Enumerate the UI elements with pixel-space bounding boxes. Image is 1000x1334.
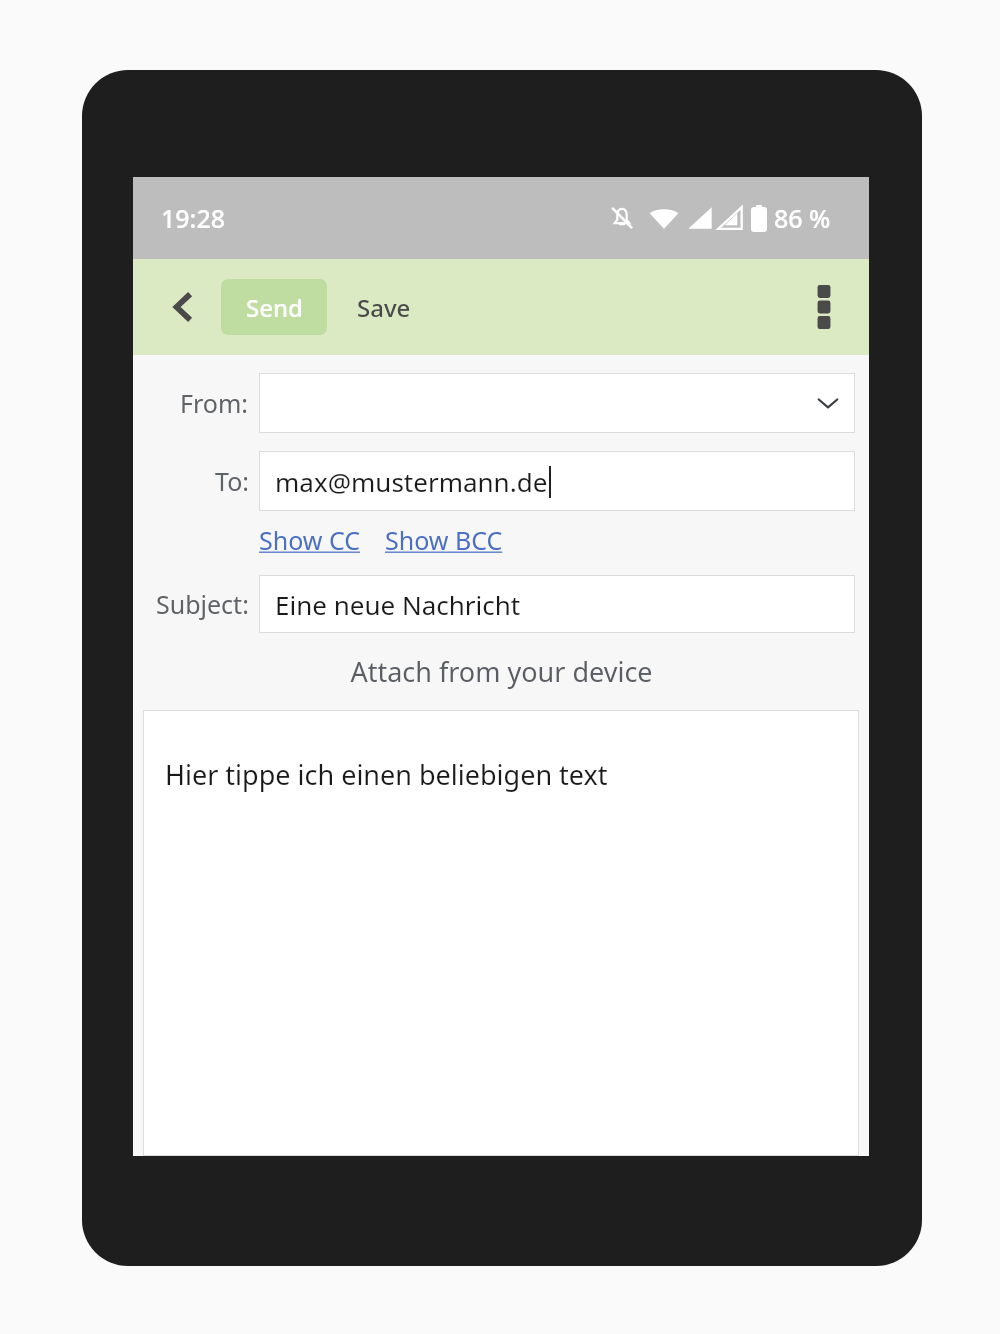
button[interactable]: Show CC xyxy=(259,523,361,557)
button[interactable]: max@mustermann.de xyxy=(259,451,855,511)
button[interactable]: Attach from your device xyxy=(133,647,869,696)
staticText: 19:28 xyxy=(161,201,226,235)
button[interactable]: Back xyxy=(155,278,213,336)
staticText: Send xyxy=(246,291,303,324)
button[interactable]: From account xyxy=(259,373,855,433)
staticText: To: xyxy=(215,464,249,498)
staticText: Subject: xyxy=(156,587,249,621)
button[interactable]: Hier tippe ich einen beliebigen text xyxy=(143,710,859,1156)
staticText: max@mustermann.de xyxy=(275,464,548,499)
staticText: Attach from your device xyxy=(350,653,653,690)
button[interactable]: More options xyxy=(797,280,851,334)
button[interactable]: Send xyxy=(221,279,327,335)
staticText: Hier tippe ich einen beliebigen text xyxy=(165,756,608,793)
button[interactable]: Eine neue Nachricht xyxy=(259,575,855,633)
staticText: From: xyxy=(180,386,249,420)
staticText: Show BCC xyxy=(385,523,503,557)
button[interactable]: Show BCC xyxy=(385,523,503,557)
staticText: Show CC xyxy=(259,523,361,557)
staticText: 86 % xyxy=(774,201,831,235)
staticText: Eine neue Nachricht xyxy=(275,587,521,622)
button[interactable]: Save xyxy=(347,281,421,334)
staticText: Save xyxy=(357,291,411,324)
